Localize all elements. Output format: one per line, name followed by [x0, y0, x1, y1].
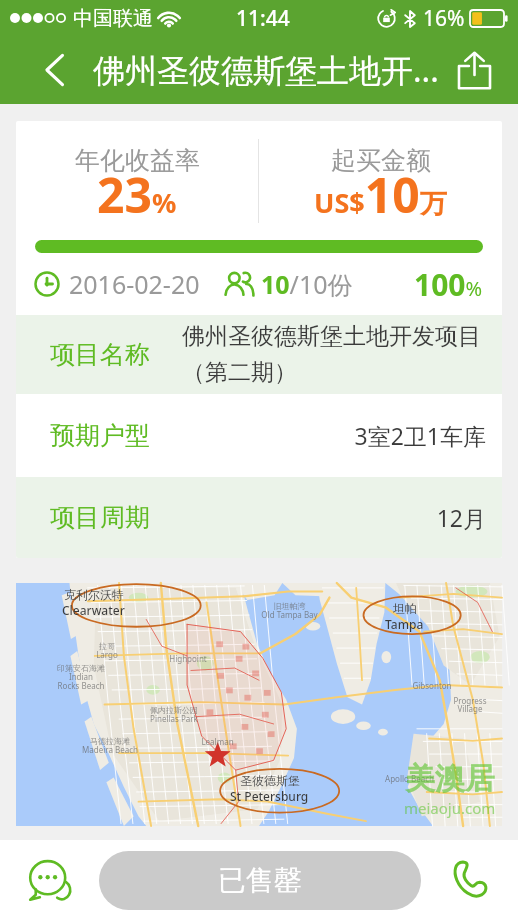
button[interactable]: Share [429, 38, 491, 102]
staticText: 马德拉海滩 Madeira Beach [82, 736, 138, 755]
staticText: 起买金额 [331, 145, 431, 176]
staticText: 3室2卫1车库 [182, 420, 486, 451]
staticText: Apollo Beach [385, 773, 434, 784]
staticText: 拉哥 Largo [96, 641, 118, 660]
staticText: 预期户型 [50, 420, 150, 451]
button[interactable]: 已售罄 [99, 851, 421, 910]
staticText: 佛州圣彼德斯堡土地开发项目（第二期） [182, 322, 486, 387]
staticText: Lealman [201, 736, 234, 747]
staticText: 印第安石海滩 Indian Rocks Beach [57, 663, 105, 691]
button[interactable]: Back [45, 38, 105, 102]
staticText: Tampa [385, 616, 424, 632]
staticText: US$10万 [314, 162, 447, 226]
staticText: meiaoju.com [404, 798, 496, 818]
staticText: 23% [97, 162, 177, 226]
staticText: Highpoint [169, 653, 207, 664]
staticText: Progress Village [453, 695, 487, 714]
staticText: 16% [423, 4, 465, 33]
staticText: 圣彼德斯堡 [240, 773, 300, 788]
staticText: 已售罄 [218, 863, 302, 898]
staticText: 100% [414, 264, 483, 305]
staticText: 2016-02-20 [69, 267, 200, 301]
staticText: 旧坦帕湾 Old Tampa Bay [261, 601, 318, 620]
staticText: 年化收益率 [75, 145, 200, 176]
staticText: Clearwater [62, 602, 125, 618]
button[interactable]: Call [421, 840, 518, 920]
staticText: 美澳居 [405, 760, 495, 798]
staticText: 坦帕 [393, 601, 417, 616]
staticText: 克利尔沃特 [64, 587, 124, 602]
staticText: 中国联通 [73, 6, 153, 31]
staticText: 项目周期 [50, 502, 150, 533]
staticText: 10/10份 [261, 267, 353, 301]
staticText: 11:44 [236, 4, 290, 33]
button[interactable]: Chat [0, 840, 99, 920]
staticText: Gibsonton [412, 680, 452, 691]
button[interactable]: Map [16, 583, 502, 826]
staticText: 项目名称 [50, 339, 150, 370]
staticText: 佛州圣彼德斯堡土地开... [93, 48, 439, 92]
staticText: 12月 [182, 502, 486, 533]
staticText: 佩内拉斯公园 Pinellas Park [150, 705, 198, 724]
staticText: St Petersburg [230, 788, 309, 804]
